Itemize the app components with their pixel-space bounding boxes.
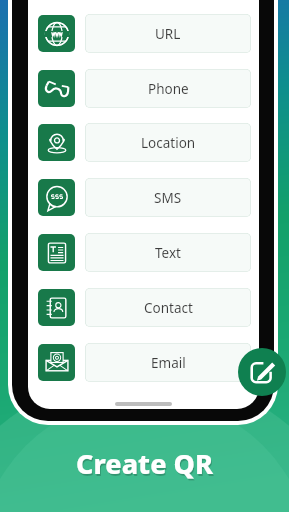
staticText: SMS (154, 189, 182, 207)
button[interactable]: Email (38, 343, 251, 382)
staticText: Phone (148, 80, 189, 98)
staticText: Contact (144, 299, 193, 317)
button[interactable]: Create new QR code (238, 348, 286, 396)
button[interactable]: SMS (38, 178, 251, 217)
button[interactable]: Phone (38, 69, 251, 108)
other: Location (38, 124, 75, 161)
other: Text (38, 234, 75, 271)
other: SMS (38, 179, 75, 216)
staticText: Create QR (77, 447, 214, 484)
button[interactable]: Text (38, 233, 251, 272)
staticText: URL (155, 25, 181, 43)
other: Phone (38, 70, 75, 107)
button[interactable]: URL (38, 14, 251, 53)
other: Contact (38, 289, 75, 326)
staticText: Text (155, 244, 181, 262)
staticText: Location (141, 134, 196, 152)
other: URL (38, 15, 75, 52)
staticText: Create QR (76, 445, 213, 482)
staticText: Email (151, 354, 186, 372)
button[interactable]: Location (38, 123, 251, 162)
button[interactable]: Contact (38, 288, 251, 327)
other: Email (38, 344, 75, 381)
